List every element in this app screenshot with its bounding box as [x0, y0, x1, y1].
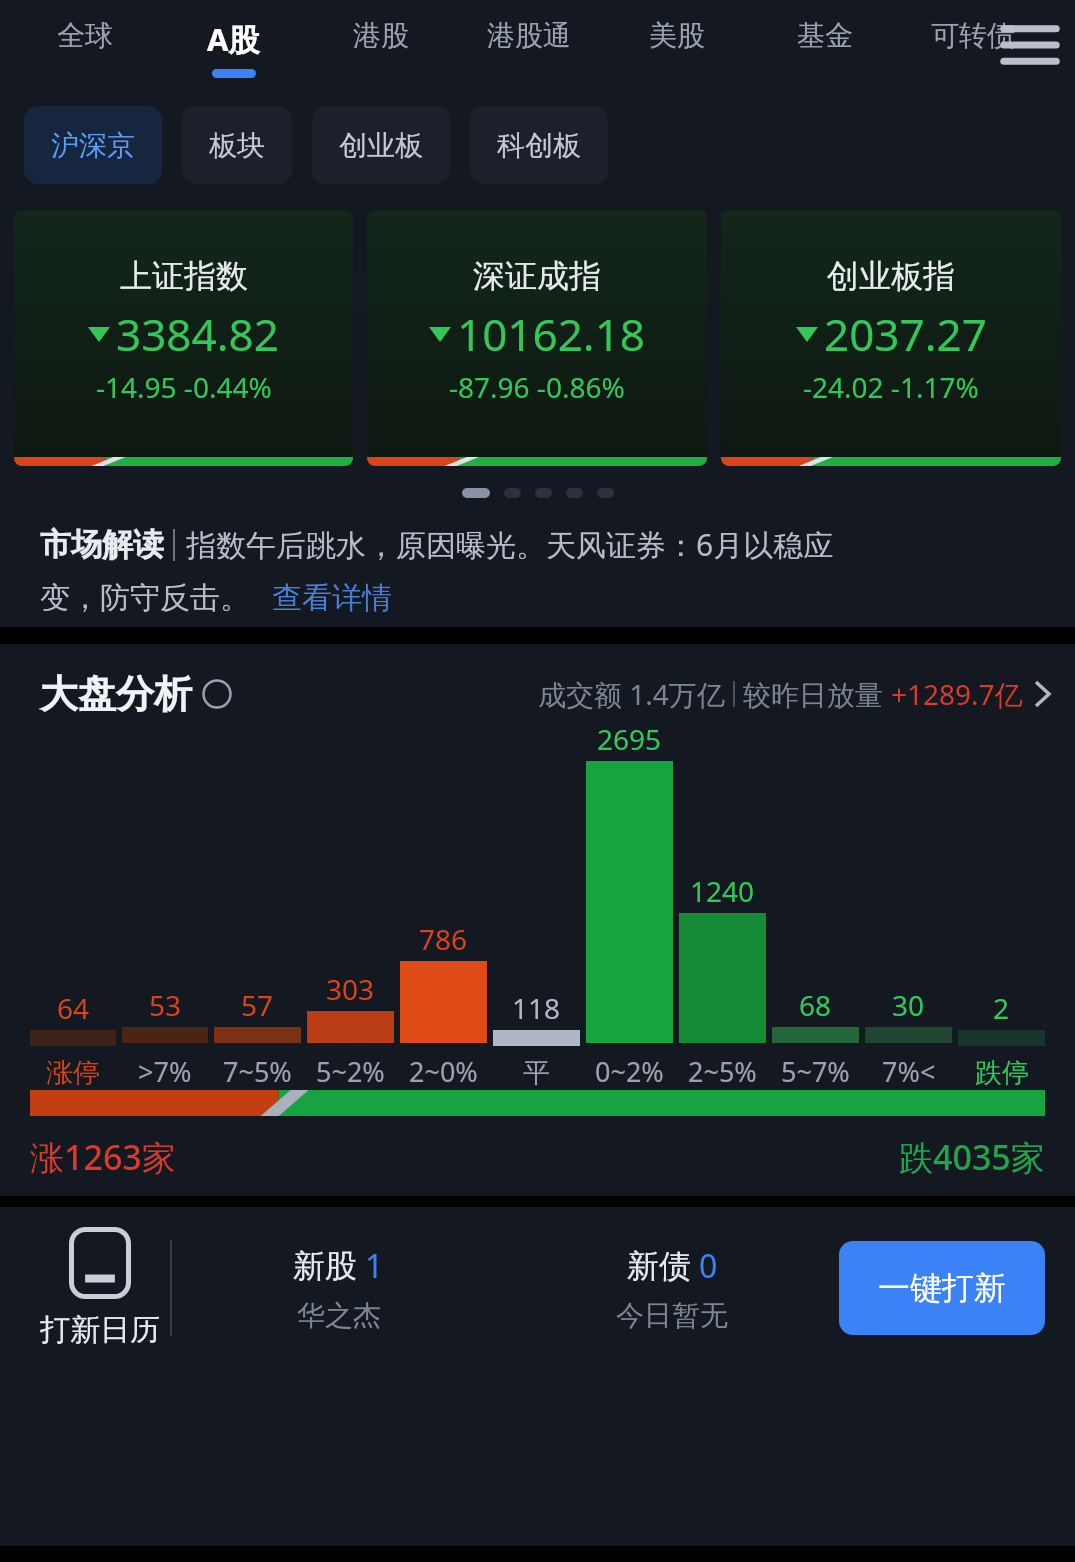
staticText: 跌4035家	[899, 1134, 1045, 1180]
staticText: 64	[57, 989, 90, 1027]
staticText: 10162.18	[457, 304, 645, 364]
staticText: 57	[241, 986, 274, 1024]
button[interactable]: 基金	[751, 0, 899, 106]
button[interactable]: 科创板	[470, 106, 608, 184]
staticText: 0~2%	[595, 1053, 664, 1090]
staticText: 变，防守反击。	[40, 579, 250, 617]
staticText: 1	[365, 1244, 384, 1288]
staticText: 2	[993, 989, 1010, 1027]
button[interactable]: 沪深京	[24, 106, 162, 184]
staticText: 华之杰	[297, 1298, 381, 1333]
staticText: 2~0%	[409, 1053, 478, 1090]
staticText: 平	[523, 1056, 550, 1090]
staticText: 5~2%	[316, 1053, 385, 1090]
staticText: -87.96 -0.86%	[449, 368, 625, 406]
staticText: 成交额 1.4万亿	[538, 675, 725, 713]
button[interactable]: A股	[159, 0, 307, 106]
button[interactable]: 港股	[307, 0, 455, 106]
staticText: 1240	[690, 872, 755, 910]
staticText: 美股	[649, 18, 705, 53]
button[interactable]: 创业板	[312, 106, 450, 184]
staticText: 创业板	[339, 128, 423, 163]
staticText: 深证成指	[473, 256, 601, 296]
button[interactable]: Menu	[997, 16, 1063, 74]
button[interactable]: 上证指数	[14, 210, 353, 466]
staticText: 科创板	[497, 128, 581, 163]
staticText: 7~5%	[223, 1053, 292, 1090]
button[interactable]: 可转债	[899, 0, 1047, 106]
staticText: 新债	[627, 1246, 691, 1286]
staticText: 基金	[797, 18, 853, 53]
staticText: 53	[149, 986, 182, 1024]
staticText: 2695	[597, 720, 662, 758]
staticText: 港股通	[487, 18, 571, 53]
staticText: 港股	[353, 18, 409, 53]
staticText: -24.02 -1.17%	[803, 368, 979, 406]
staticText: 118	[512, 989, 561, 1027]
staticText: 沪深京	[51, 128, 135, 163]
staticText: 今日暂无	[616, 1298, 728, 1333]
staticText: 68	[799, 986, 832, 1024]
staticText: 市场解读	[40, 525, 164, 564]
button[interactable]: 板块	[182, 106, 292, 184]
staticText: 查看详情	[272, 579, 392, 617]
button[interactable]: 大盘分析	[40, 670, 1053, 718]
staticText: 上证指数	[120, 256, 248, 296]
staticText: 786	[419, 920, 468, 958]
staticText: 打新日历	[40, 1311, 160, 1349]
button[interactable]: 查看详情	[272, 579, 392, 617]
staticText: 3384.82	[116, 304, 279, 364]
staticText: 创业板指	[827, 256, 955, 296]
button[interactable]: 一键打新	[839, 1241, 1045, 1335]
button[interactable]: 深证成指	[367, 210, 707, 466]
staticText: 可转债	[931, 18, 1015, 53]
staticText: 5~7%	[781, 1053, 850, 1090]
staticText: 大盘分析	[40, 670, 192, 718]
staticText: 跌停	[975, 1056, 1029, 1090]
staticText: 涨1263家	[30, 1134, 176, 1180]
button[interactable]: 美股	[603, 0, 751, 106]
staticText: 303	[326, 970, 375, 1008]
staticText: 指数午后跳水，原因曝光。天风证券：6月以稳应	[186, 524, 834, 565]
button[interactable]: 新债	[505, 1244, 839, 1333]
staticText: >7%	[138, 1053, 192, 1090]
staticText: 板块	[209, 128, 265, 163]
button[interactable]: 创业板指	[721, 210, 1061, 466]
button[interactable]: 新股	[172, 1244, 505, 1333]
button[interactable]: 全球	[10, 0, 159, 106]
staticText: 2~5%	[688, 1053, 757, 1090]
button[interactable]: 打新日历	[30, 1227, 170, 1349]
staticText: 0	[699, 1244, 718, 1288]
staticText: 新股	[293, 1246, 357, 1286]
staticText: 一键打新	[878, 1268, 1006, 1308]
staticText: A股	[207, 18, 260, 60]
staticText: 7%<	[882, 1053, 936, 1090]
staticText: 30	[892, 986, 925, 1024]
staticText: 2037.27	[824, 304, 987, 364]
staticText: 涨停	[46, 1056, 100, 1090]
staticText: -14.95 -0.44%	[96, 368, 272, 406]
button[interactable]: 港股通	[455, 0, 603, 106]
staticText: 较昨日放量	[743, 675, 891, 713]
staticText: +1289.7亿	[891, 675, 1023, 713]
staticText: 全球	[57, 18, 113, 53]
